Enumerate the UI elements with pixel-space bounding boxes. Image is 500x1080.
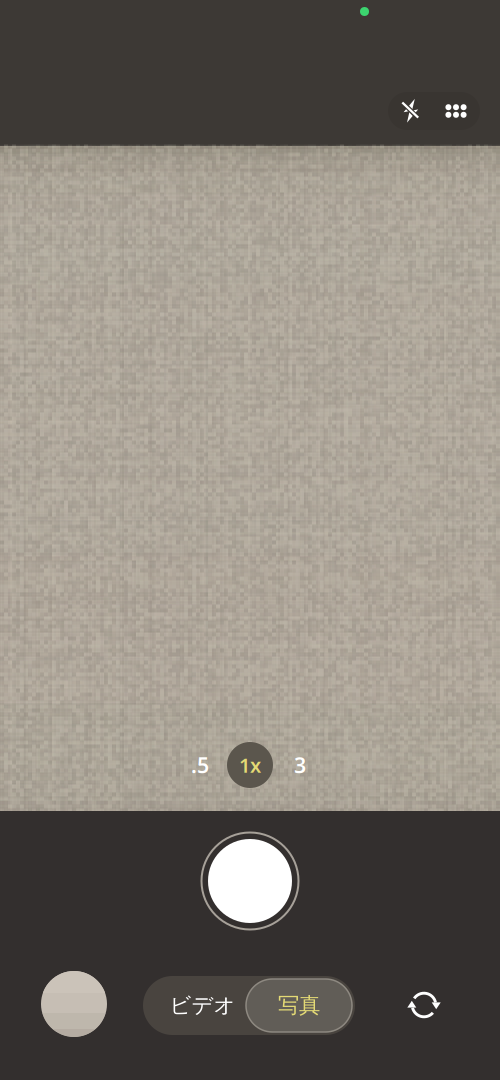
button[interactable]: Flash off — [388, 91, 432, 131]
button[interactable]: More camera controls — [434, 91, 478, 131]
staticText: .5 — [191, 751, 209, 779]
staticText: 3 — [294, 751, 306, 779]
button[interactable]: ビデオ — [151, 976, 254, 1035]
button[interactable]: 1x — [225, 740, 275, 790]
button[interactable]: .5 — [175, 740, 225, 790]
staticText: 1x — [239, 752, 261, 778]
button[interactable]: 3 — [275, 740, 325, 790]
staticText: ビデオ — [169, 992, 235, 1019]
button[interactable]: Photo library — [41, 971, 107, 1037]
button[interactable]: Switch camera — [398, 979, 450, 1031]
staticText: 写真 — [278, 992, 320, 1019]
button[interactable]: 写真 — [246, 979, 352, 1032]
button[interactable]: Take photo — [195, 826, 305, 936]
